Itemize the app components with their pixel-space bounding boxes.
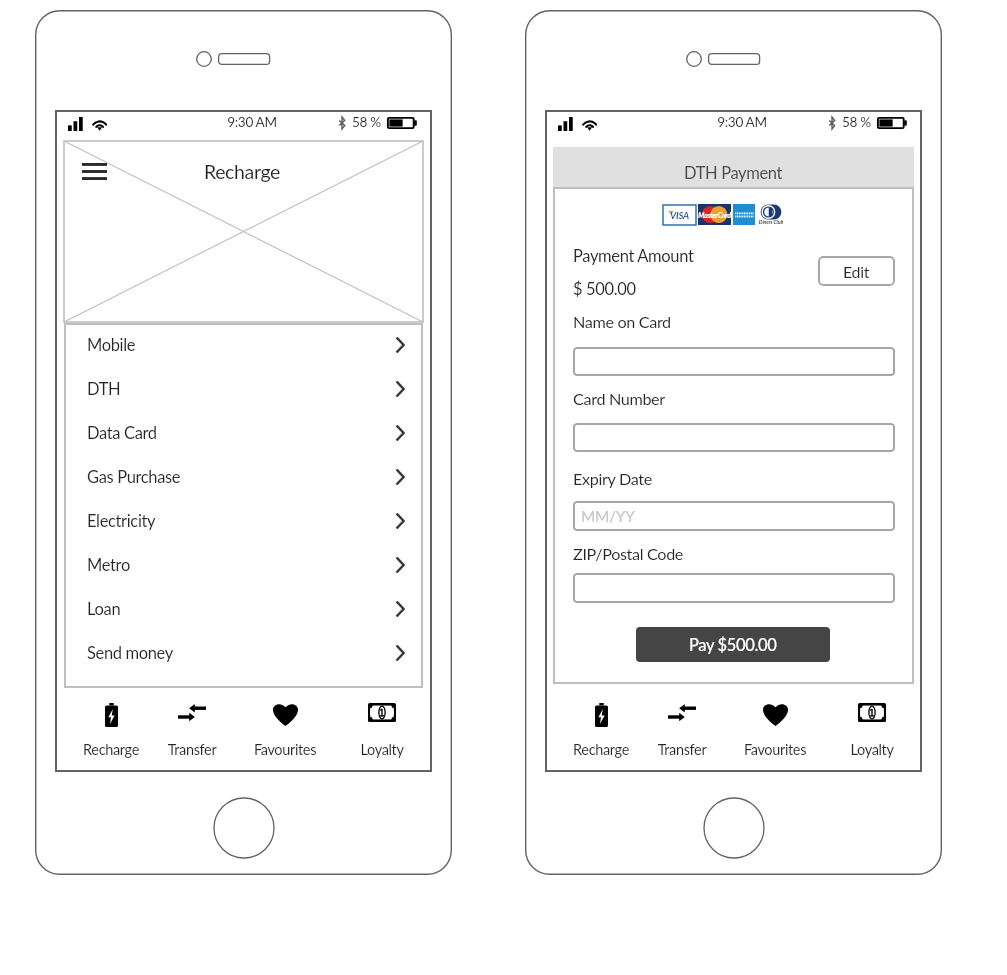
staticText: Payment Amount (573, 246, 694, 266)
staticText: 58 % (352, 114, 381, 130)
button[interactable]: Recharge (56, 693, 166, 755)
button[interactable]: Favourites (720, 693, 830, 755)
button[interactable]: Electricity (64, 499, 423, 543)
staticText: DTH Payment (684, 163, 783, 183)
button[interactable]: Favourites (230, 693, 340, 755)
button[interactable]: Pay $500.00 (636, 627, 830, 662)
staticText: 9:30 AM (712, 114, 772, 130)
staticText: Data Card (87, 423, 157, 443)
staticText: Mobile (87, 335, 136, 355)
staticText: Loyalty (817, 741, 927, 758)
staticText: Name on Card (573, 312, 671, 331)
staticText: Recharge (546, 741, 656, 758)
button[interactable]: Edit (818, 256, 895, 286)
staticText: Metro (87, 555, 130, 575)
button[interactable]: Loyalty (327, 693, 437, 755)
button[interactable]: Recharge (546, 693, 656, 755)
staticText: Card Number (573, 389, 665, 408)
button[interactable]: Mobile (64, 323, 423, 367)
staticText: Expiry Date (573, 469, 652, 488)
staticText: $ 500.00 (573, 279, 636, 299)
staticText: Electricity (87, 511, 156, 531)
button[interactable]: Loan (64, 587, 423, 631)
staticText: MasterCard (698, 211, 731, 219)
staticText: Loyalty (327, 741, 437, 758)
button[interactable]: DTH (64, 367, 423, 411)
staticText: MM/YY (581, 507, 635, 526)
button[interactable]: Transfer (627, 693, 737, 755)
button[interactable]: Send money (64, 631, 423, 675)
staticText: 9:30 AM (222, 114, 282, 130)
button[interactable]: Gas Purchase (64, 455, 423, 499)
staticText: VISA (663, 210, 696, 221)
button[interactable]: Metro (64, 543, 423, 587)
staticText: Transfer (627, 741, 737, 758)
staticText: Favourites (230, 741, 340, 758)
staticText: Pay $500.00 (689, 635, 777, 655)
staticText: 58 % (842, 114, 871, 130)
staticText: Favourites (720, 741, 830, 758)
button[interactable]: MM/YY (573, 501, 895, 531)
button[interactable] (573, 347, 895, 376)
button[interactable] (573, 573, 895, 603)
staticText: Transfer (137, 741, 247, 758)
button[interactable] (573, 423, 895, 452)
button[interactable]: Transfer (137, 693, 247, 755)
button[interactable]: Open navigation menu (77, 159, 112, 189)
staticText: Send money (87, 643, 173, 663)
staticText: Edit (843, 262, 870, 281)
staticText: ZIP/Postal Code (573, 544, 684, 563)
staticText: Diners Club (758, 219, 784, 225)
staticText: Recharge (182, 160, 302, 183)
button[interactable]: Data Card (64, 411, 423, 455)
staticText: Recharge (56, 741, 166, 758)
staticText: Loan (87, 599, 121, 619)
button[interactable]: Loyalty (817, 693, 927, 755)
staticText: DTH (87, 379, 121, 399)
staticText: Gas Purchase (87, 467, 181, 487)
